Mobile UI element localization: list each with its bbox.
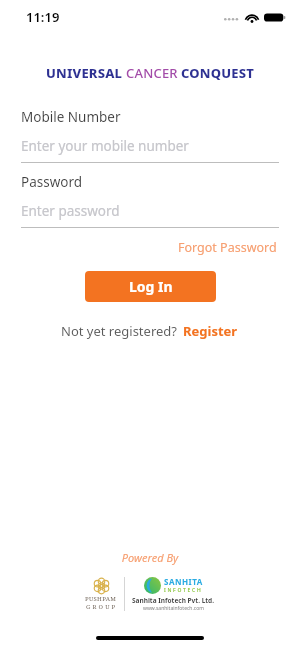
staticText: Mobile Number <box>21 108 121 126</box>
staticText: SANHITA <box>164 576 203 587</box>
staticText: 11:19 <box>26 8 60 26</box>
staticText: Log In <box>129 277 173 296</box>
staticText: www.sanhitainfotech.com <box>143 605 204 612</box>
button[interactable]: Log In <box>85 271 216 302</box>
staticText: Sanhita Infotech Pvt. Ltd. <box>132 596 215 605</box>
staticText: Powered By <box>0 550 300 565</box>
button[interactable]: Forgot Password <box>176 237 279 258</box>
staticText: Password <box>21 173 83 191</box>
staticText: Register <box>183 322 238 340</box>
staticText: UNIVERSAL <box>46 64 123 82</box>
staticText: PUSHPAM <box>85 595 117 603</box>
staticText: Not yet registered? <box>61 322 177 340</box>
staticText: G R O U P <box>86 603 116 611</box>
staticText: Enter your mobile number <box>21 137 189 155</box>
button[interactable]: Mobile Number <box>21 108 279 163</box>
button[interactable]: Password <box>21 173 279 228</box>
staticText: CONQUEST <box>181 64 255 82</box>
staticText: CANCER <box>126 64 178 82</box>
staticText: I N F O T E C H <box>164 587 201 594</box>
button[interactable]: Register <box>182 320 239 342</box>
staticText: Forgot Password <box>178 239 277 256</box>
staticText: Enter password <box>21 202 120 220</box>
